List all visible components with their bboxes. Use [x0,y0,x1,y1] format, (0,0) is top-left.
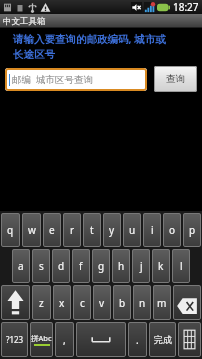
staticText: y [109,223,115,237]
staticText: l [180,259,183,273]
button[interactable]: i [143,213,161,247]
button[interactable]: Delete [173,285,201,320]
button[interactable]: Switch input language [30,322,53,357]
staticText: v [99,296,105,310]
button[interactable]: v [93,285,111,320]
button[interactable]: . [128,322,147,357]
button[interactable]: h [112,249,130,283]
staticText: 完成 [154,334,172,345]
button[interactable]: e [43,213,61,247]
button[interactable]: k [152,249,170,283]
button[interactable]: b [113,285,131,320]
staticText: q [7,223,14,237]
button[interactable]: Shift [1,285,30,320]
button[interactable]: f [72,249,90,283]
button[interactable]: , [55,322,74,357]
button[interactable]: p [183,213,201,247]
staticText: t [90,223,94,237]
staticText: r [70,223,75,237]
staticText: p [189,223,196,237]
staticText: . [136,333,139,347]
staticText: b [119,296,126,310]
staticText: k [158,259,164,273]
staticText: s [39,259,44,273]
staticText: i [151,223,154,237]
staticText: m [157,296,167,310]
button[interactable]: 完成 [149,322,176,357]
staticText: 查询 [166,73,185,85]
staticText: 拼Abc [31,333,52,343]
button[interactable]: d [52,249,70,283]
button[interactable]: q [1,213,20,247]
staticText: 长途区号 [13,48,55,61]
button[interactable]: w [22,213,41,247]
staticText: 请输入要查询的邮政编码, 城市或 [13,32,166,46]
button[interactable]: l [172,249,190,283]
staticText: ?123 [6,334,24,345]
staticText: c [80,296,85,310]
staticText: f [79,259,83,273]
button[interactable]: a [12,249,30,283]
button[interactable]: 查询 [154,66,197,92]
staticText: a [18,259,24,273]
button[interactable]: g [92,249,110,283]
button[interactable]: n [133,285,151,320]
staticText: h [118,259,125,273]
button[interactable]: z [32,285,51,320]
button[interactable]: 邮编 城市区号查询 [5,68,147,91]
staticText: j [140,259,143,273]
staticText: o [169,223,176,237]
staticText: z [39,296,44,310]
button[interactable]: u [123,213,141,247]
staticText: 18:27 [173,0,199,14]
button[interactable]: y [103,213,121,247]
staticText: x [59,296,65,310]
button[interactable]: ?123 [1,322,28,357]
button[interactable]: Space [76,322,126,357]
staticText: g [98,259,105,273]
staticText: 中文工具箱 [3,16,46,27]
button[interactable]: Keyboard layout [178,322,201,357]
staticText: u [129,223,136,237]
button[interactable]: s [32,249,50,283]
button[interactable]: o [163,213,181,247]
staticText: e [49,223,55,237]
staticText: , [63,333,66,347]
staticText: n [139,296,146,310]
button[interactable]: c [73,285,91,320]
button[interactable]: r [63,213,81,247]
staticText: w [28,223,36,237]
button[interactable]: t [83,213,101,247]
button[interactable]: x [53,285,71,320]
staticText: 邮编 城市区号查询 [12,73,93,86]
button[interactable]: m [153,285,171,320]
staticText: d [58,259,65,273]
button[interactable]: j [132,249,150,283]
